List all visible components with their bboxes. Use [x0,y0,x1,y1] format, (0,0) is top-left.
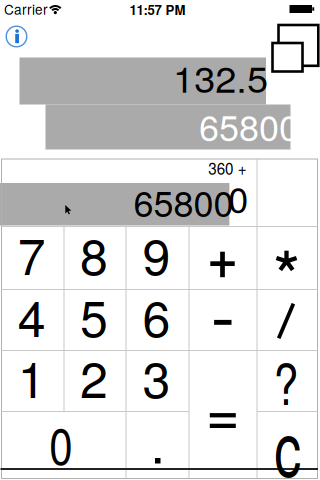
staticText: 65800 [199,100,299,152]
staticText: 6 [142,280,170,351]
staticText: 7 [18,218,46,289]
button[interactable]: 1 [1,350,64,411]
button[interactable]: equals [189,350,257,469]
staticText: Carrier [4,0,48,19]
button[interactable]: 6 [126,289,189,350]
button[interactable]: Info [4,24,28,48]
button[interactable]: 5 [64,289,126,350]
staticText: 0 [228,172,248,224]
staticText: 132.5 [178,51,268,103]
button[interactable]: plus [189,226,257,289]
staticText: 9 [142,218,170,289]
button[interactable]: 4 [1,289,64,350]
staticText: 65800 [133,176,233,227]
staticText: 11:57 PM [129,0,185,19]
button[interactable]: 2 [64,350,126,411]
button[interactable]: divide [257,289,317,350]
button[interactable]: point [126,411,189,469]
button[interactable]: multiply [257,226,317,289]
staticText: 8 [80,218,108,289]
staticText: 360 + [205,156,247,179]
staticText: 4 [18,280,46,351]
staticText: c [269,390,307,480]
button[interactable]: Copy [271,23,320,73]
button[interactable]: 7 [1,226,64,289]
staticText: ? [270,341,301,421]
button[interactable]: 8 [64,226,126,289]
staticText: 5 [80,280,108,351]
staticText: 1 [18,341,46,412]
button[interactable]: c [257,411,317,469]
button[interactable]: ? [257,350,317,411]
staticText: 2 [80,341,108,412]
button[interactable]: minus [189,289,257,350]
staticText: 0 [47,406,76,479]
button[interactable]: 3 [126,350,189,411]
button[interactable]: 0 [1,411,126,469]
button[interactable]: 9 [126,226,189,289]
staticText: 3 [142,341,170,412]
